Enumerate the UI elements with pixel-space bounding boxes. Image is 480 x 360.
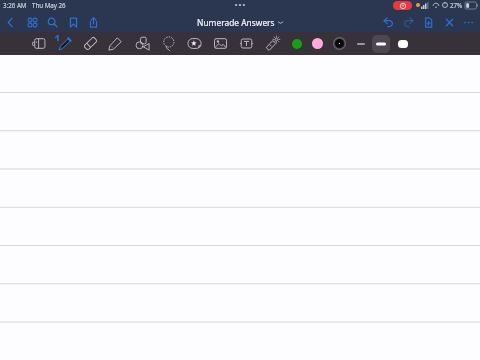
- button[interactable]: Green colour: [286, 32, 307, 55]
- button[interactable]: New page: [418, 12, 438, 32]
- button[interactable]: Black colour, selected: [329, 32, 350, 55]
- button[interactable]: Thin stroke: [350, 32, 371, 55]
- button[interactable]: Pink colour: [307, 32, 328, 55]
- button[interactable]: Lasso select: [156, 32, 180, 55]
- button[interactable]: Medium stroke, selected: [372, 35, 390, 53]
- button[interactable]: Insert image: [208, 32, 232, 55]
- button[interactable]: Search: [42, 12, 62, 32]
- button[interactable]: Close: [439, 12, 459, 32]
- button[interactable]: Numerade Answers: [197, 17, 283, 28]
- button[interactable]: Share: [83, 12, 103, 32]
- button[interactable]: Text box: [234, 32, 258, 55]
- button[interactable]: More options: [458, 12, 478, 32]
- button[interactable]: Page layout: [27, 32, 51, 55]
- staticText: Thu May 26: [32, 1, 66, 9]
- button[interactable]: Highlighter: [103, 32, 127, 55]
- button[interactable]: Back: [0, 12, 20, 32]
- button[interactable]: Eraser: [78, 32, 102, 55]
- staticText: 27%: [450, 1, 463, 9]
- button[interactable]: Redo: [398, 12, 418, 32]
- button[interactable]: Stickers: [182, 32, 206, 55]
- button[interactable]: Shapes: [130, 32, 154, 55]
- button[interactable]: Bookmark: [63, 12, 83, 32]
- button[interactable]: Pen: [53, 32, 77, 55]
- button[interactable]: Thick stroke: [392, 32, 413, 55]
- button[interactable]: Pages overview: [22, 12, 42, 32]
- staticText: 3:26 AM: [3, 1, 27, 9]
- button[interactable]: Laser pointer: [260, 32, 284, 55]
- button[interactable]: Undo: [378, 12, 398, 32]
- staticText: Numerade Answers: [197, 17, 275, 28]
